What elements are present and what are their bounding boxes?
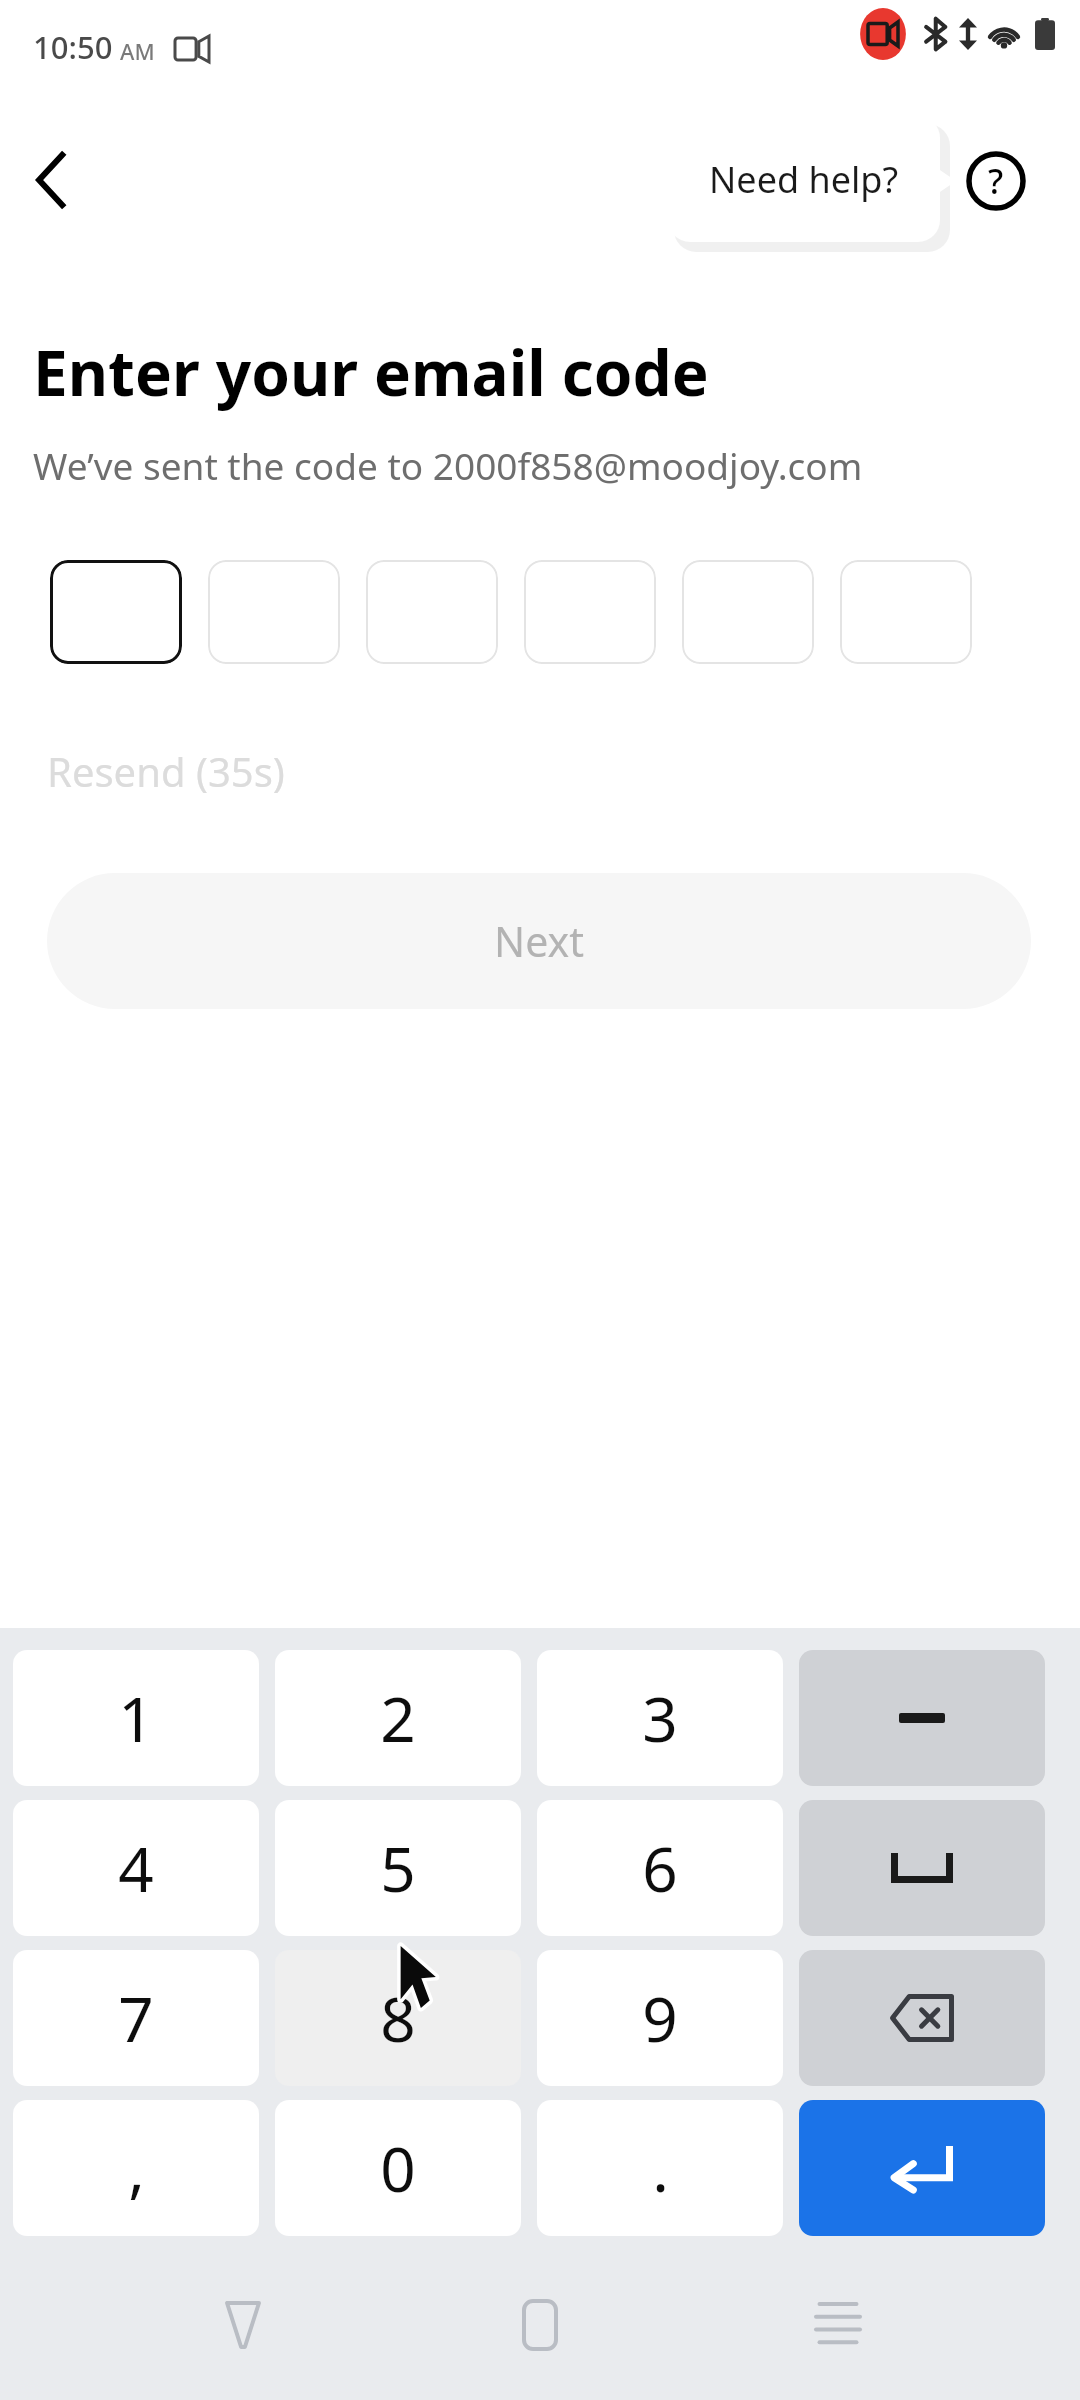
- button[interactable]: Recent apps: [783, 2270, 893, 2380]
- button[interactable]: 5: [275, 1800, 521, 1936]
- staticText: ?: [988, 158, 1004, 204]
- staticText: Resend (35s): [47, 744, 285, 798]
- staticText: 7: [118, 1976, 154, 2060]
- staticText: 5: [380, 1826, 416, 1910]
- button[interactable]: [682, 560, 814, 664]
- staticText: Need help?: [709, 155, 899, 204]
- button[interactable]: Enter: [799, 2100, 1045, 2236]
- button[interactable]: Minus: [799, 1650, 1045, 1786]
- button[interactable]: 9: [537, 1950, 783, 2086]
- button[interactable]: 6: [537, 1800, 783, 1936]
- button[interactable]: 1: [13, 1650, 259, 1786]
- button[interactable]: 3: [537, 1650, 783, 1786]
- staticText: 9: [642, 1976, 678, 2060]
- button[interactable]: [524, 560, 656, 664]
- button[interactable]: .: [537, 2100, 783, 2236]
- button[interactable]: ,: [13, 2100, 259, 2236]
- staticText: 4: [118, 1826, 154, 1910]
- button[interactable]: 7: [13, 1950, 259, 2086]
- button[interactable]: Space: [799, 1800, 1045, 1936]
- staticText: 2: [380, 1676, 416, 1760]
- button[interactable]: Backspace: [799, 1950, 1045, 2086]
- button[interactable]: Resend (35s): [47, 744, 285, 798]
- button[interactable]: [208, 560, 340, 664]
- button[interactable]: [366, 560, 498, 664]
- staticText: 0: [380, 2126, 416, 2210]
- button[interactable]: Home: [485, 2270, 595, 2380]
- staticText: 3: [642, 1676, 678, 1760]
- staticText: AM: [120, 36, 155, 66]
- staticText: .: [652, 2126, 669, 2210]
- staticText: We’ve sent the code to 2000f858@moodjoy.…: [33, 440, 863, 490]
- staticText: Enter your email code: [33, 330, 709, 414]
- staticText: 10:50: [33, 26, 113, 68]
- button[interactable]: Next: [47, 873, 1031, 1009]
- button[interactable]: Back: [12, 140, 92, 220]
- button[interactable]: [840, 560, 972, 664]
- button[interactable]: 2: [275, 1650, 521, 1786]
- staticText: ,: [128, 2126, 145, 2210]
- staticText: 6: [642, 1826, 678, 1910]
- staticText: 8: [380, 1976, 416, 2060]
- button[interactable]: 8: [275, 1950, 521, 2086]
- button[interactable]: Help: [955, 140, 1037, 222]
- staticText: Next: [494, 913, 584, 969]
- button[interactable]: 0: [275, 2100, 521, 2236]
- button[interactable]: 4: [13, 1800, 259, 1936]
- button[interactable]: Need help?: [668, 116, 940, 242]
- button[interactable]: [50, 560, 182, 664]
- staticText: 1: [118, 1676, 154, 1760]
- button[interactable]: Back: [188, 2270, 298, 2380]
